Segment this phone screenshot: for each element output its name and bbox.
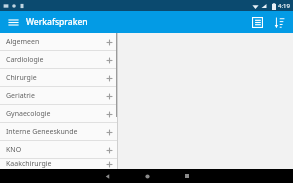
staticText: 4:19 [278,2,290,10]
button[interactable]: Interne Geneeskunde [0,123,118,141]
button[interactable]: Algemeen [0,33,118,51]
button[interactable]: KNO [0,141,118,159]
staticText: Werkafspraken [26,16,88,28]
button[interactable]: Home [130,169,164,183]
staticText: Cardiologie [6,55,106,65]
button[interactable]: Gynaecologie [0,105,118,123]
staticText: Geriatrie [6,91,106,101]
staticText: Gynaecologie [6,109,106,119]
button[interactable]: Recent apps [170,169,204,183]
button[interactable]: Sort [270,13,288,31]
button[interactable]: Kaakchirurgie [0,159,118,169]
button[interactable]: Chirurgie [0,69,118,87]
button[interactable]: Geriatrie [0,87,118,105]
button[interactable]: View mode [248,13,266,31]
staticText: KNO [6,145,106,155]
staticText: Chirurgie [6,73,106,83]
staticText: Kaakchirurgie [6,159,106,169]
button[interactable]: Open navigation drawer [5,14,21,30]
button[interactable]: Back [90,169,124,183]
button[interactable]: Cardiologie [0,51,118,69]
staticText: Interne Geneeskunde [6,127,106,137]
staticText: Algemeen [6,37,106,47]
